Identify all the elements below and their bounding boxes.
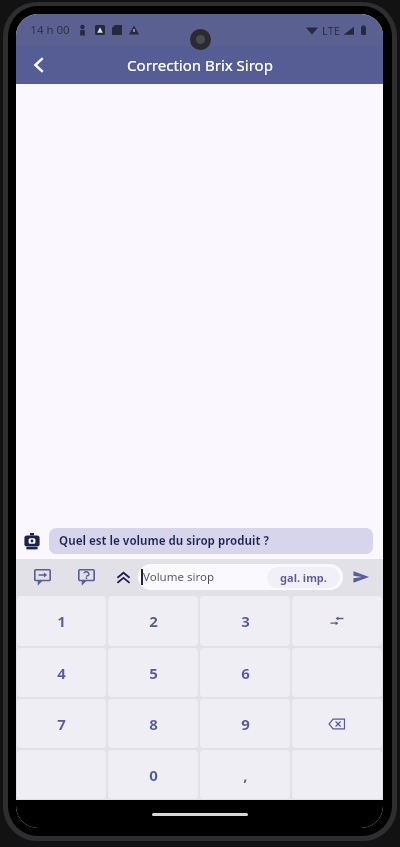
button[interactable]: 2 (108, 596, 198, 646)
button[interactable]: 9 (200, 699, 290, 748)
staticText: 3 (241, 611, 250, 631)
button[interactable]: Next question (20, 559, 64, 595)
button[interactable]: , (200, 750, 290, 799)
staticText: Volume sirop (143, 569, 214, 585)
button[interactable]: 5 (108, 648, 198, 697)
button[interactable]: Help (64, 559, 108, 595)
button[interactable]: 4 (17, 648, 106, 697)
button[interactable]: Expand (108, 559, 138, 595)
button[interactable]: Back (16, 46, 62, 84)
button[interactable]: 7 (17, 699, 106, 748)
button[interactable]: 6 (200, 648, 290, 697)
staticText: gal. imp. (280, 570, 327, 585)
staticText: 1 (57, 611, 66, 631)
staticText: Correction Brix Sirop (127, 55, 273, 75)
button[interactable]: gal. imp. (267, 567, 340, 588)
staticText: 5 (149, 663, 158, 683)
staticText: 4 (57, 663, 66, 683)
button[interactable]: 1 (17, 596, 106, 646)
staticText: Quel est le volume du sirop produit ? (59, 533, 269, 549)
button[interactable]: Backspace (292, 699, 382, 748)
staticText: 9 (241, 714, 250, 734)
button[interactable]: 8 (108, 699, 198, 748)
staticText: , (243, 765, 248, 785)
staticText: 7 (57, 714, 66, 734)
button[interactable]: Volume sirop (138, 564, 343, 590)
staticText: 2 (149, 611, 158, 631)
staticText: LTE (322, 23, 340, 38)
staticText: 14 h 00 (30, 22, 70, 38)
button[interactable]: 0 (108, 750, 198, 799)
staticText: 0 (149, 765, 158, 785)
button[interactable]: Send (343, 559, 379, 595)
staticText: 6 (241, 663, 250, 683)
button[interactable]: Quel est le volume du sirop produit ? (49, 528, 373, 554)
staticText: 8 (149, 714, 158, 734)
button[interactable]: 3 (200, 596, 290, 646)
button[interactable]: Tab (292, 596, 382, 646)
